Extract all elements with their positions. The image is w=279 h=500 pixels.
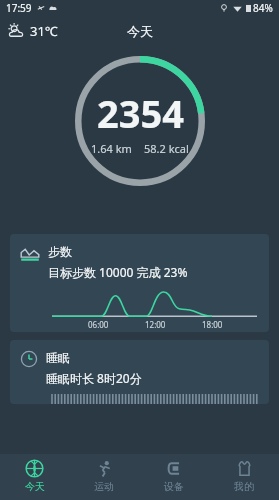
staticText: 1.64 km (91, 141, 132, 156)
button[interactable]: 步数 (10, 234, 269, 332)
button[interactable]: 睡眠 (10, 340, 269, 404)
button[interactable]: Daily steps progress (75, 56, 205, 186)
button[interactable]: 31℃ (6, 20, 60, 42)
staticText: 12:00 (145, 319, 202, 330)
button[interactable]: 运动 (69, 454, 139, 500)
staticText: 今天 (25, 480, 45, 493)
staticText: 运动 (94, 480, 114, 493)
staticText: 今天 (127, 23, 153, 39)
staticText: 17:59 (6, 1, 32, 15)
staticText: 设备 (164, 480, 184, 493)
staticText: 2354 (97, 87, 184, 139)
staticText: 84% (253, 1, 273, 15)
staticText: 步数 (48, 244, 72, 259)
staticText: 18:00 (202, 319, 257, 330)
staticText: 58.2 kcal (144, 141, 189, 156)
staticText: 睡眠时长 8时20分 (46, 370, 142, 386)
staticText: 我的 (234, 480, 254, 493)
staticText: 31℃ (30, 22, 58, 40)
button[interactable]: 今天 (0, 454, 69, 500)
staticText: 06:00 (88, 319, 145, 330)
button[interactable]: 我的 (209, 454, 279, 500)
staticText: 睡眠 (46, 350, 70, 365)
button[interactable]: 设备 (139, 454, 209, 500)
staticText: 目标步数 10000 完成 23% (48, 264, 188, 280)
